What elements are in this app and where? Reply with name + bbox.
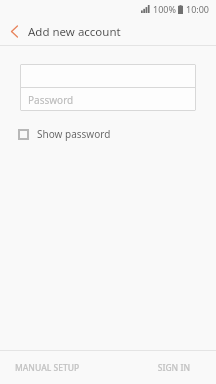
- staticText: Password: [28, 93, 74, 107]
- staticText: 100%: [153, 3, 176, 15]
- button[interactable]: [20, 64, 196, 87]
- staticText: MANUAL SETUP: [15, 362, 80, 374]
- staticText: SIGN IN: [157, 362, 190, 374]
- staticText: Add new account: [28, 24, 121, 40]
- button[interactable]: Password: [20, 88, 196, 111]
- button[interactable]: Navigate up: [0, 18, 28, 45]
- staticText: 10:00: [186, 3, 210, 15]
- staticText: Show password: [37, 127, 111, 141]
- button[interactable]: Show password: [0, 123, 216, 145]
- button[interactable]: SIGN IN: [108, 351, 216, 384]
- button[interactable]: MANUAL SETUP: [0, 351, 108, 384]
